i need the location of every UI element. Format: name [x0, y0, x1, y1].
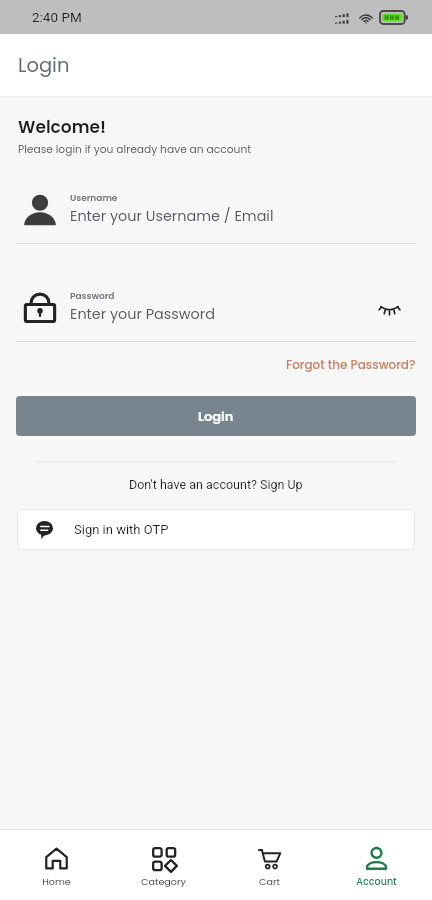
button[interactable]: Category [113, 838, 213, 892]
button[interactable]: Forgot the Password? [276, 353, 432, 376]
button[interactable]: Login [16, 396, 416, 436]
staticText: Username [70, 192, 118, 205]
staticText: Password [70, 290, 115, 303]
staticText: Sign in with OTP [74, 522, 169, 537]
staticText: Login [18, 52, 70, 79]
staticText: Enter your Password [70, 304, 215, 324]
button[interactable]: Account [326, 838, 426, 892]
staticText: Forgot the Password? [286, 356, 416, 373]
other: Username [21, 190, 59, 228]
staticText: Please login if you already have an acco… [18, 142, 252, 157]
button[interactable]: Show password [376, 294, 416, 321]
staticText: Home [42, 875, 71, 888]
button[interactable]: Sign in with OTP [17, 509, 415, 550]
other: Show password [376, 294, 403, 321]
other: Password [21, 288, 59, 326]
staticText: Account [356, 875, 397, 888]
button[interactable]: Cart [219, 838, 319, 892]
button[interactable]: Home [6, 838, 106, 892]
staticText: 2:40 PM [32, 9, 82, 25]
staticText: Login [198, 407, 234, 425]
staticText: Don't have an account? Sign Up [129, 477, 303, 492]
staticText: Cart [259, 875, 280, 888]
button[interactable]: Don't have an account? Sign Up [123, 475, 309, 494]
button[interactable]: Username [0, 190, 432, 244]
staticText: Welcome! [18, 115, 107, 139]
button[interactable]: Password [0, 288, 432, 342]
staticText: Category [141, 875, 186, 888]
staticText: Enter your Username / Email [70, 206, 274, 226]
